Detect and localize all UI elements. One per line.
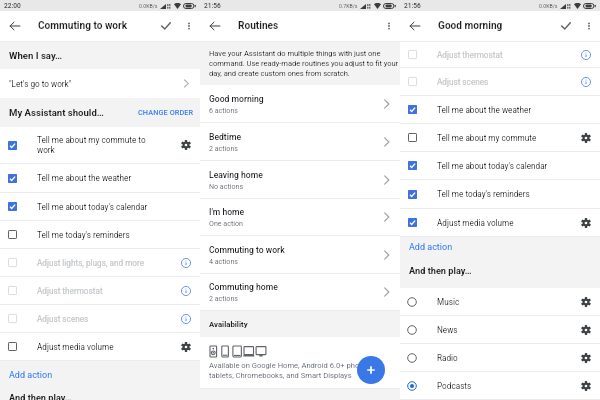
staticText: When I say… <box>9 50 63 61</box>
button[interactable]: Radio <box>400 344 600 371</box>
button[interactable]: More options <box>380 17 398 35</box>
staticText: And then play… <box>9 392 72 400</box>
staticText: Tell me about my commute to work <box>37 135 150 155</box>
button[interactable]: Add routine <box>357 356 385 384</box>
button[interactable]: Tell me about the weather <box>400 96 600 123</box>
staticText: Commuting home <box>209 282 278 292</box>
staticText: One action <box>209 219 243 227</box>
staticText: And then play… <box>409 265 472 276</box>
button[interactable]: Back <box>406 17 424 35</box>
staticText: Routines <box>238 20 279 32</box>
button[interactable]: I'm home <box>200 199 400 235</box>
staticText: 21:56 <box>204 2 221 10</box>
staticText: Good morning <box>209 94 264 104</box>
button[interactable]: Settings <box>580 132 592 144</box>
staticText: 0.7KB/s <box>339 3 358 9</box>
staticText: Tell me about the weather <box>37 173 150 183</box>
button[interactable]: Info <box>580 49 592 61</box>
button[interactable]: Commuting home <box>200 274 400 310</box>
button[interactable]: News <box>400 316 600 343</box>
staticText: 2 actions <box>209 144 238 152</box>
button[interactable]: Add action <box>0 367 200 383</box>
button[interactable]: Settings <box>580 380 592 392</box>
staticText: Have your Assistant do multiple things w… <box>209 49 400 78</box>
button[interactable]: Save <box>157 17 175 35</box>
staticText: My Assistant should… <box>9 107 104 118</box>
staticText: 22:00 <box>4 2 21 10</box>
button[interactable]: Add action <box>400 239 600 255</box>
staticText: Tell me today's reminders <box>437 189 550 199</box>
button[interactable]: Tell me about today's calendar <box>400 152 600 179</box>
staticText: 21:56 <box>404 2 421 10</box>
button[interactable]: Settings <box>180 341 192 353</box>
button[interactable]: More options <box>580 17 598 35</box>
staticText: Podcasts <box>437 381 472 391</box>
staticText: 2 actions <box>209 294 238 302</box>
button[interactable]: Adjust scenes <box>0 305 200 332</box>
button[interactable]: Settings <box>580 352 592 364</box>
button[interactable]: Podcasts <box>400 372 600 399</box>
staticText: Adjust lights, plugs, and more <box>37 258 150 268</box>
staticText: Adjust thermostat <box>37 286 150 296</box>
button[interactable]: Tell me about my commute <box>400 124 600 151</box>
button[interactable]: Back <box>6 17 24 35</box>
staticText: Music <box>437 297 460 307</box>
staticText: Commuting to work <box>38 20 128 32</box>
button[interactable]: More options <box>180 17 198 35</box>
button[interactable]: Tell me about my commute to work <box>0 127 200 163</box>
button[interactable]: Leaving home <box>200 161 400 198</box>
staticText: Adjust scenes <box>437 77 550 87</box>
staticText: Tell me about my commute <box>437 133 550 143</box>
button[interactable]: Settings <box>580 296 592 308</box>
button[interactable]: Adjust thermostat <box>400 42 600 67</box>
staticText: CHANGE ORDER <box>138 108 194 117</box>
button[interactable]: Adjust media volume <box>400 209 600 236</box>
button[interactable]: Settings <box>180 139 192 151</box>
button[interactable]: Bedtime <box>200 123 400 160</box>
staticText: Radio <box>437 353 458 363</box>
staticText: News <box>437 325 458 335</box>
staticText: Adjust scenes <box>37 314 150 324</box>
staticText: Commuting to work <box>209 245 285 255</box>
button[interactable]: Adjust media volume <box>0 333 200 360</box>
button[interactable]: Tell me about the weather <box>0 164 200 192</box>
staticText: Tell me about today's calendar <box>437 161 550 171</box>
staticText: I'm home <box>209 207 245 217</box>
staticText: "Let's go to work" <box>9 79 72 89</box>
staticText: Leaving home <box>209 170 263 180</box>
button[interactable]: Settings <box>580 217 592 229</box>
button[interactable]: CHANGE ORDER <box>138 108 194 117</box>
button[interactable]: Info <box>180 285 192 297</box>
button[interactable]: Settings <box>580 324 592 336</box>
staticText: Bedtime <box>209 132 242 142</box>
staticText: Adjust thermostat <box>437 50 550 60</box>
button[interactable]: Tell me today's reminders <box>400 180 600 208</box>
button[interactable]: Back <box>206 17 224 35</box>
staticText: Adjust media volume <box>37 342 150 352</box>
staticText: Tell me about today's calendar <box>37 202 150 212</box>
button[interactable]: Good morning <box>200 85 400 122</box>
button[interactable]: Save <box>557 17 575 35</box>
button[interactable]: Tell me today's reminders <box>0 221 200 248</box>
staticText: Availability <box>209 320 248 329</box>
button[interactable]: Info <box>180 313 192 325</box>
staticText: 0.0KB/s <box>139 3 158 9</box>
button[interactable]: Adjust lights, plugs, and more <box>0 249 200 276</box>
staticText: 6 actions <box>209 106 238 114</box>
staticText: Add action <box>9 370 53 381</box>
button[interactable]: Adjust thermostat <box>0 277 200 304</box>
staticText: Good morning <box>438 20 503 32</box>
button[interactable]: Tell me about today's calendar <box>0 193 200 220</box>
staticText: Adjust media volume <box>437 218 550 228</box>
button[interactable]: "Let's go to work" <box>0 69 200 98</box>
staticText: 0.0KB/s <box>539 3 558 9</box>
staticText: Tell me about the weather <box>437 105 550 115</box>
button[interactable]: Commuting to work <box>200 236 400 273</box>
button[interactable]: Info <box>580 76 592 88</box>
staticText: Available on Google Home, Android 6.0+ p… <box>209 361 393 380</box>
staticText: 4 actions <box>209 257 238 265</box>
button[interactable]: Adjust scenes <box>400 68 600 95</box>
button[interactable]: Info <box>180 257 192 269</box>
button[interactable]: Music <box>400 288 600 315</box>
staticText: Add action <box>409 242 453 253</box>
